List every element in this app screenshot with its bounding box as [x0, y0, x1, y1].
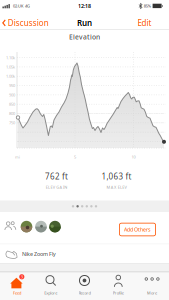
- staticText: 1.10k: [6, 55, 15, 60]
- staticText: 10: [131, 154, 135, 160]
- button[interactable]: Add Others: [119, 223, 156, 236]
- button[interactable]: Nike Zoom Fly: [0, 244, 169, 264]
- staticText: Explore: [44, 290, 57, 296]
- button[interactable]: Record: [68, 271, 101, 300]
- staticText: 3: [21, 274, 23, 279]
- staticText: Profile: [113, 290, 124, 296]
- button[interactable]: More: [135, 271, 169, 300]
- button[interactable]: Edit: [137, 17, 151, 29]
- button[interactable]: Profile: [101, 271, 135, 300]
- staticText: Record: [78, 290, 90, 296]
- button[interactable]: 3: [0, 271, 34, 300]
- staticText: Feed: [13, 290, 21, 296]
- staticText: 900: [9, 92, 15, 97]
- staticText: Add Others: [124, 226, 151, 233]
- staticText: mi: [15, 154, 20, 160]
- staticText: 750: [9, 120, 15, 125]
- staticText: 762 ft: [45, 171, 68, 182]
- staticText: 1.00k: [6, 73, 15, 79]
- staticText: 950: [9, 83, 15, 88]
- staticText: ELEV GAIN: [46, 185, 67, 190]
- staticText: 02-UK 4G: [13, 3, 30, 9]
- staticText: 12:18: [78, 2, 91, 10]
- staticText: More: [147, 290, 157, 296]
- staticText: 85%: [144, 3, 151, 9]
- button[interactable]: Discussion: [2, 17, 49, 29]
- staticText: Elevation: [69, 33, 100, 41]
- staticText: Discussion: [8, 18, 49, 28]
- staticText: Run: [77, 18, 92, 28]
- button[interactable]: Explore: [34, 271, 68, 300]
- staticText: 800: [9, 111, 15, 116]
- staticText: 1.05k: [6, 64, 15, 69]
- staticText: 850: [9, 101, 15, 107]
- staticText: Edit: [137, 18, 151, 28]
- staticText: 1,063 ft: [101, 171, 131, 182]
- staticText: 5: [74, 154, 76, 160]
- staticText: MAX ELEV: [106, 185, 127, 190]
- staticText: Nike Zoom Fly: [22, 250, 56, 258]
